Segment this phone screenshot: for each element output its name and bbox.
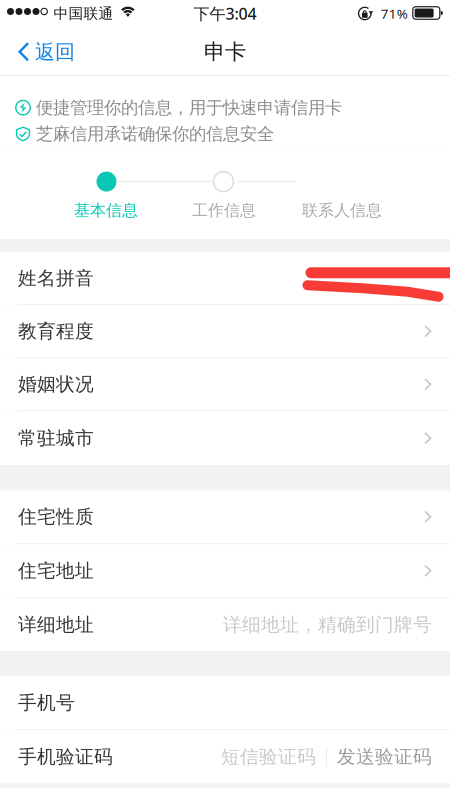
staticText: 工作信息 xyxy=(192,201,256,220)
staticText: 联系人信息 xyxy=(302,201,382,220)
staticText: 住宅地址 xyxy=(18,559,94,582)
staticText: 便捷管理你的信息，用于快速申请信用卡 xyxy=(36,97,342,118)
staticText: 常驻城市 xyxy=(18,427,94,450)
staticText: 短信验证码 xyxy=(221,745,316,768)
staticText: 发送验证码 xyxy=(337,745,432,768)
staticText: 71% xyxy=(381,5,408,22)
button[interactable]: 返回 xyxy=(0,32,87,72)
staticText: 婚姻状况 xyxy=(18,373,94,396)
staticText: 申卡 xyxy=(204,39,246,65)
staticText: 下午3:04 xyxy=(193,3,256,24)
staticText: 详细地址 xyxy=(18,613,94,636)
staticText: 手机号 xyxy=(18,691,75,714)
button[interactable]: 住宅地址 xyxy=(0,544,450,598)
staticText: 姓名拼音 xyxy=(18,267,94,290)
staticText: 中国联通 xyxy=(53,4,113,22)
button[interactable]: 婚姻状况 xyxy=(0,358,450,411)
button[interactable]: 发送验证码 xyxy=(327,745,432,768)
button[interactable]: 手机验证码 xyxy=(0,730,450,783)
staticText: 芝麻信用承诺确保你的信息安全 xyxy=(36,123,274,145)
staticText: 手机验证码 xyxy=(18,745,113,768)
staticText: 详细地址，精确到门牌号 xyxy=(223,613,432,636)
staticText: 返回 xyxy=(35,40,75,64)
button[interactable]: 手机号 xyxy=(0,676,450,730)
button[interactable]: 常驻城市 xyxy=(0,411,450,465)
button[interactable]: 详细地址 xyxy=(0,598,450,651)
staticText: 教育程度 xyxy=(18,320,94,343)
button[interactable]: 教育程度 xyxy=(0,305,450,358)
button[interactable]: 姓名拼音 xyxy=(0,252,450,305)
staticText: 住宅性质 xyxy=(18,505,94,528)
button[interactable]: 住宅性质 xyxy=(0,490,450,544)
staticText: 基本信息 xyxy=(74,201,138,220)
